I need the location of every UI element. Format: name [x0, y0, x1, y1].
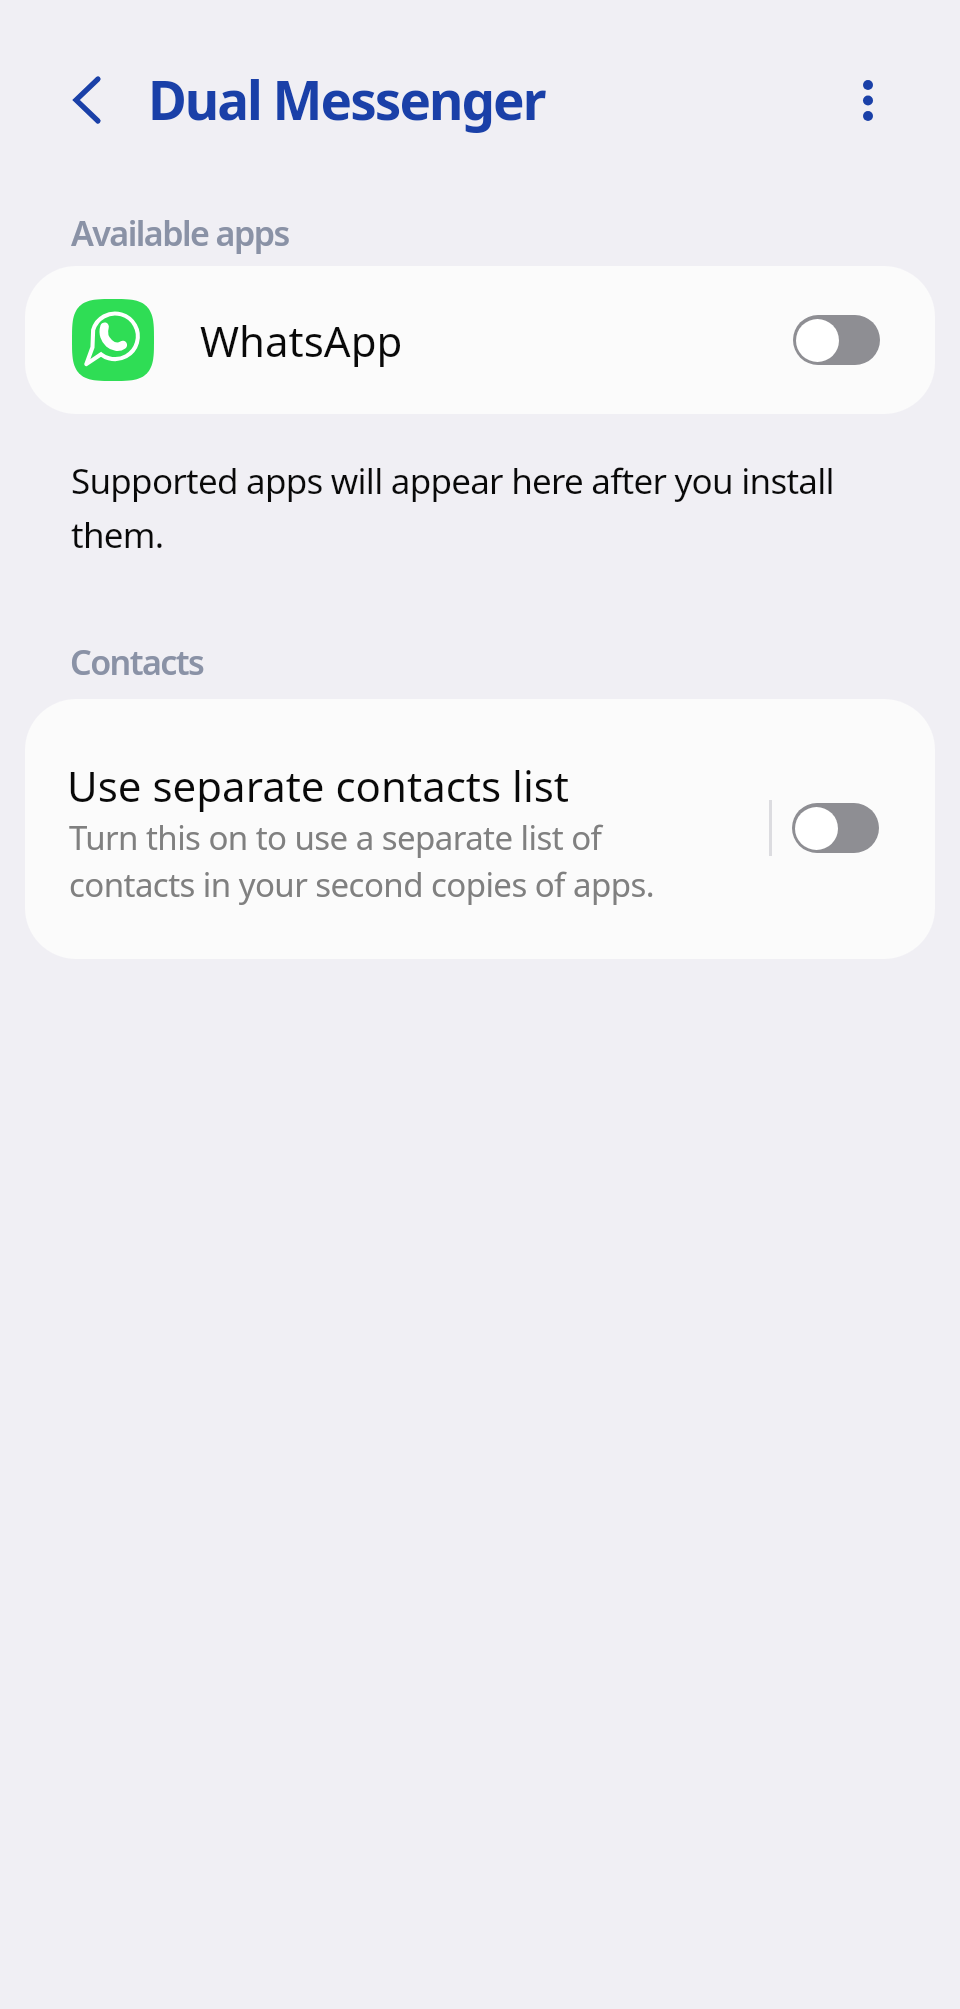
button[interactable]: Off: [793, 315, 880, 365]
staticText: WhatsApp: [200, 312, 403, 369]
button[interactable]: Use separate contacts list: [25, 699, 935, 959]
button[interactable]: More options: [833, 65, 903, 135]
staticText: Available apps: [71, 210, 289, 256]
staticText: Use separate contacts list: [67, 757, 570, 814]
button[interactable]: WhatsApp: [25, 266, 935, 414]
button[interactable]: Off: [792, 803, 879, 853]
staticText: Turn this on to use a separate list of c…: [69, 815, 679, 907]
staticText: Contacts: [70, 639, 204, 685]
staticText: Supported apps will appear here after yo…: [71, 457, 861, 559]
staticText: Dual Messenger: [148, 63, 545, 135]
button[interactable]: Navigate up: [52, 65, 122, 135]
